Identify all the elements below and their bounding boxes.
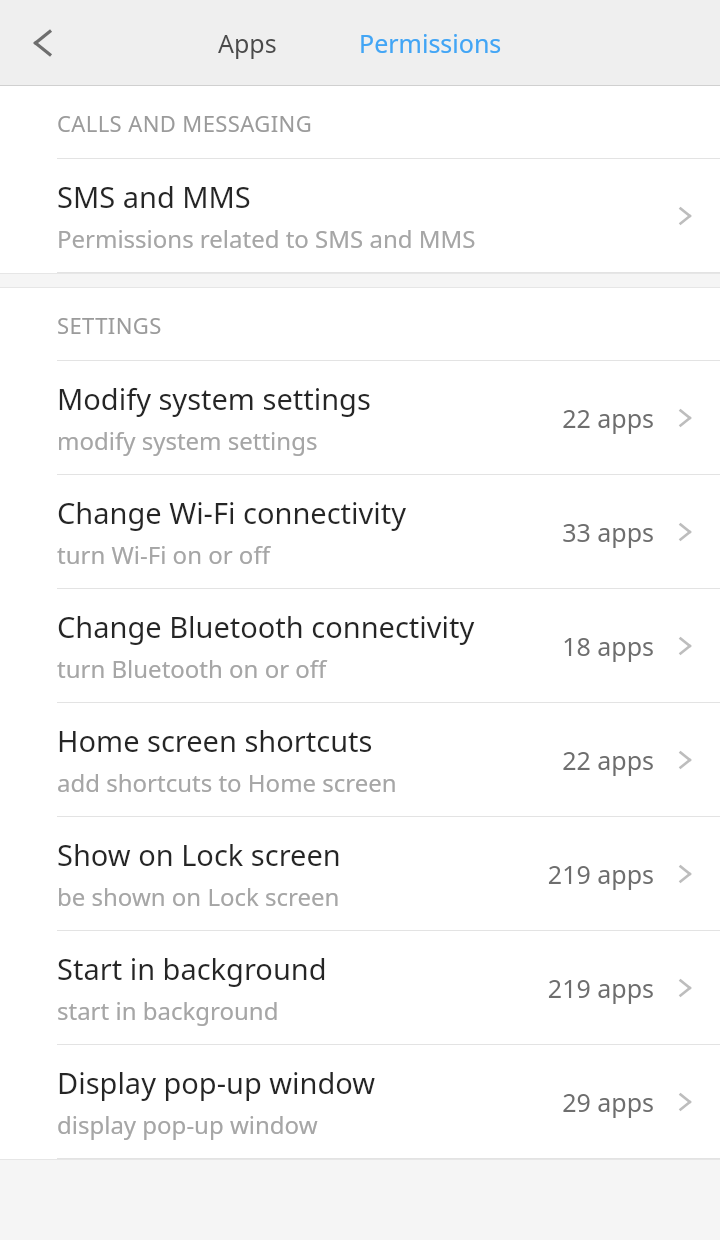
button[interactable]: Home screen shortcuts	[0, 703, 720, 817]
staticText: 22 apps	[562, 743, 654, 777]
staticText: display pop-up window	[57, 1108, 318, 1141]
staticText: 219 apps	[547, 971, 654, 1005]
staticText: 22 apps	[562, 401, 654, 435]
button[interactable]: Apps	[200, 14, 295, 72]
staticText: Change Bluetooth connectivity	[57, 607, 475, 646]
button[interactable]: SMS and MMS	[0, 159, 720, 273]
button[interactable]: Change Bluetooth connectivity	[0, 589, 720, 703]
button[interactable]: Permissions	[341, 14, 520, 72]
staticText: start in background	[57, 994, 279, 1027]
staticText: modify system settings	[57, 424, 318, 457]
staticText: Home screen shortcuts	[57, 721, 373, 760]
staticText: turn Wi-Fi on or off	[57, 538, 270, 571]
staticText: SMS and MMS	[57, 177, 251, 216]
button[interactable]: Change Wi-Fi connectivity	[0, 475, 720, 589]
staticText: Modify system settings	[57, 379, 371, 418]
staticText: 18 apps	[562, 629, 654, 663]
button[interactable]: Display pop-up window	[0, 1045, 720, 1159]
staticText: SETTINGS	[57, 310, 162, 340]
staticText: 33 apps	[562, 515, 654, 549]
staticText: Apps	[218, 26, 277, 60]
staticText: Change Wi-Fi connectivity	[57, 493, 407, 532]
staticText: Display pop-up window	[57, 1063, 376, 1102]
staticText: Permissions	[359, 26, 502, 60]
staticText: be shown on Lock screen	[57, 880, 340, 913]
staticText: turn Bluetooth on or off	[57, 652, 327, 685]
staticText: Show on Lock screen	[57, 835, 341, 874]
staticText: add shortcuts to Home screen	[57, 766, 397, 799]
staticText: Start in background	[57, 949, 327, 988]
staticText: 219 apps	[547, 857, 654, 891]
staticText: Permissions related to SMS and MMS	[57, 222, 476, 255]
button[interactable]: Start in background	[0, 931, 720, 1045]
staticText: 29 apps	[562, 1085, 654, 1119]
button[interactable]: Modify system settings	[0, 361, 720, 475]
button[interactable]: Show on Lock screen	[0, 817, 720, 931]
staticText: CALLS AND MESSAGING	[57, 108, 313, 138]
button[interactable]: Back	[0, 0, 86, 86]
